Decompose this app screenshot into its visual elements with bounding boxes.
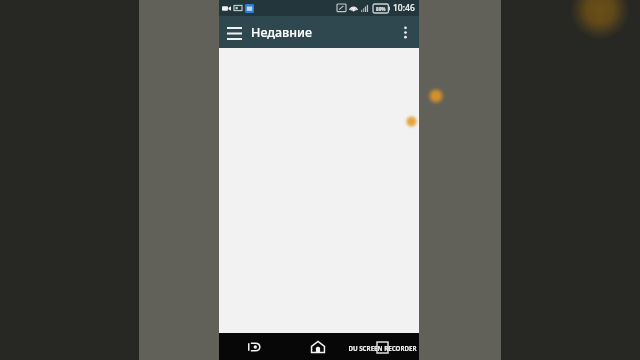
button[interactable]: More options [391, 18, 419, 46]
staticText: DU SCREEN RECORDER [348, 344, 417, 352]
staticText: 10:46 [393, 2, 415, 14]
staticText: 80% [376, 6, 386, 12]
staticText: Недавние [251, 24, 313, 41]
button[interactable]: Back [243, 336, 265, 358]
button[interactable]: Home [306, 335, 330, 359]
button[interactable]: Recent apps [371, 336, 393, 358]
button[interactable]: Open navigation drawer [219, 17, 249, 47]
